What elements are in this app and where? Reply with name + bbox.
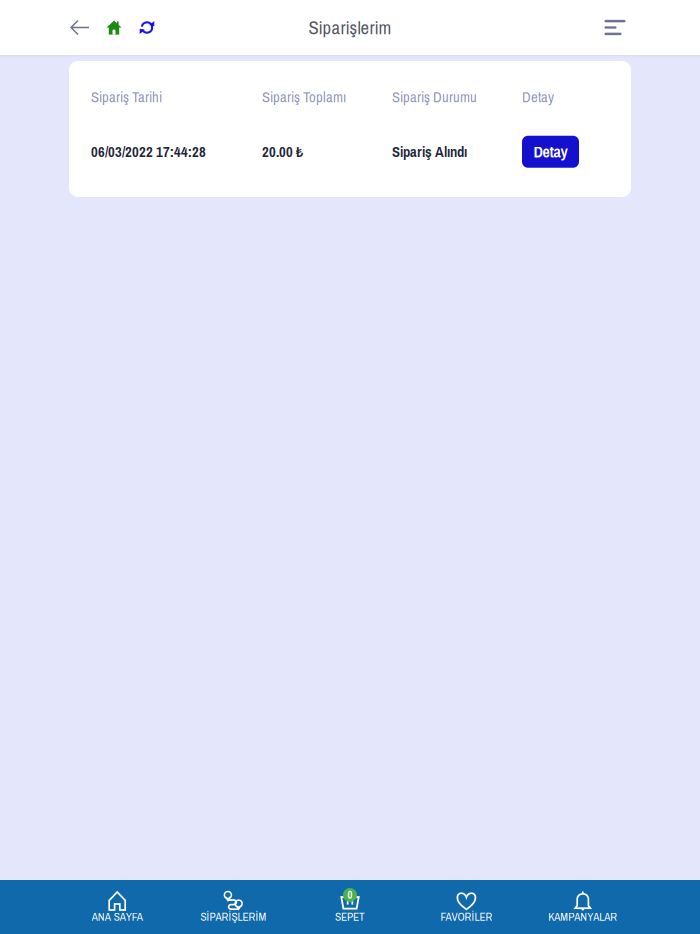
staticText: Sipariş Tarihi	[91, 87, 162, 107]
button[interactable]: SİPARİŞLERİM	[175, 880, 292, 934]
button[interactable]: ANA SAYFA	[59, 880, 175, 934]
staticText: Detay	[522, 87, 554, 107]
staticText: 0	[347, 888, 352, 902]
button[interactable]: KAMPANYALAR	[525, 880, 641, 934]
button[interactable]: 0	[292, 880, 408, 934]
staticText: SEPET	[335, 909, 365, 924]
staticText: Detay	[533, 141, 567, 163]
staticText: ANA SAYFA	[92, 909, 143, 924]
staticText: 20.00 ₺	[262, 142, 303, 162]
staticText: 06/03/2022 17:44:28	[91, 142, 206, 162]
staticText: Sipariş Durumu	[392, 87, 477, 107]
staticText: KAMPANYALAR	[548, 909, 617, 924]
staticText: Sipariş Alındı	[392, 142, 467, 162]
button[interactable]: Back	[61, 7, 99, 47]
staticText: Sipariş Toplamı	[262, 87, 346, 107]
button[interactable]: Detay	[522, 136, 579, 168]
staticText: FAVORİLER	[440, 909, 492, 924]
button[interactable]: Home	[99, 7, 129, 47]
button[interactable]: Refresh	[129, 7, 165, 47]
staticText: Siparişlerim	[308, 15, 391, 40]
staticText: SİPARİŞLERİM	[201, 909, 267, 924]
button[interactable]: FAVORİLER	[408, 880, 525, 934]
button[interactable]: Menu	[596, 7, 634, 47]
